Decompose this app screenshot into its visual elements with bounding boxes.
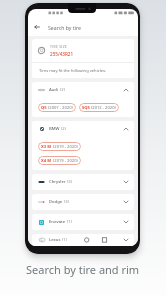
button[interactable]: BMW	[32, 121, 134, 137]
staticText: (2012 - 2020)	[90, 105, 116, 111]
staticText: Enovate	[49, 219, 66, 225]
staticText: (2007 - 2020)	[47, 105, 73, 111]
button[interactable]: Expand	[122, 198, 130, 206]
staticText: Audi	[49, 87, 59, 93]
staticText: (2)	[59, 87, 65, 93]
button[interactable]: Lexus	[32, 234, 134, 246]
button[interactable]: Dodge	[32, 194, 134, 210]
staticText: (2019 - 2020)	[52, 158, 78, 164]
staticText: (1)	[66, 219, 72, 225]
button[interactable]: Chrysler	[32, 174, 134, 190]
staticText: TIRE SIZE	[50, 44, 67, 49]
button[interactable]: TIRE SIZE	[32, 39, 134, 62]
staticText: Dodge	[49, 199, 63, 205]
button[interactable]: Collapse	[122, 86, 130, 94]
staticText: (1)	[61, 237, 67, 243]
staticText: (2019 - 2020)	[52, 144, 78, 150]
staticText: Search by tire	[48, 24, 82, 31]
staticText: (3)	[63, 199, 69, 205]
staticText: X4 M	[41, 158, 52, 164]
staticText: (2)	[60, 126, 66, 132]
button[interactable]: X4 M	[38, 156, 81, 165]
staticText: Chrysler	[49, 179, 66, 185]
staticText: BMW	[49, 126, 60, 132]
button[interactable]: Back	[30, 20, 44, 34]
button[interactable]: Expand	[122, 178, 130, 186]
button[interactable]: Expand	[122, 218, 130, 226]
staticText: (3)	[66, 179, 72, 185]
button[interactable]: Q5	[38, 103, 76, 112]
button[interactable]: Collapse	[122, 125, 130, 133]
button[interactable]: Expand	[122, 236, 130, 244]
staticText: Tires may fit the following vehicles:	[39, 68, 107, 74]
staticText: Search by tire and rim	[26, 262, 140, 277]
button[interactable]: SQ5	[79, 103, 119, 112]
staticText: Q5	[41, 105, 47, 111]
staticText: Lexus	[49, 237, 61, 243]
button[interactable]: X3 M	[38, 142, 81, 151]
staticText: SQ5	[82, 105, 90, 111]
button[interactable]: Audi	[32, 82, 134, 98]
staticText: X3 M	[41, 144, 52, 150]
button[interactable]: Enovate	[32, 214, 134, 230]
staticText: 255/43R21	[50, 51, 74, 57]
